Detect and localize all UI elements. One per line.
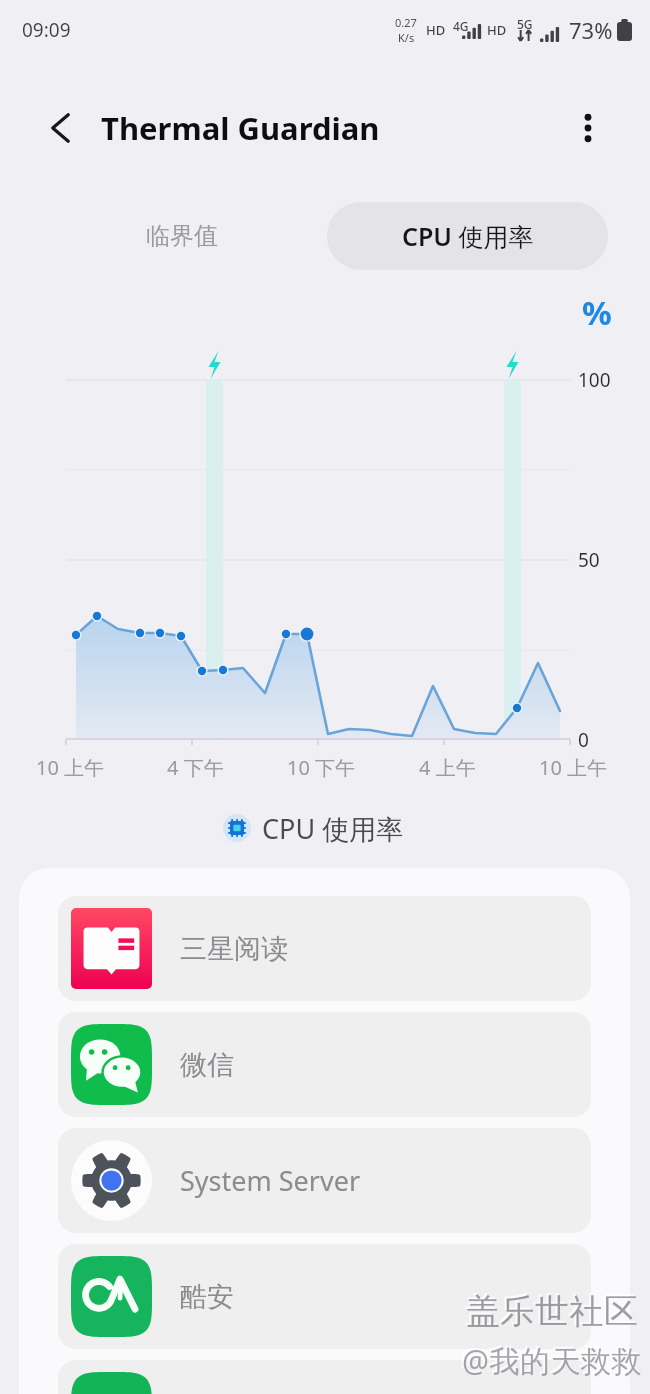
staticText: 10 下午 [287, 754, 356, 781]
button[interactable]: 临界值 [42, 202, 323, 270]
staticText: % [582, 290, 612, 330]
button[interactable] [58, 1360, 591, 1394]
staticText: 4 上午 [419, 754, 476, 781]
button[interactable]: System Server [58, 1128, 591, 1233]
staticText: 酷安 [180, 1280, 234, 1314]
button[interactable]: 微信 [58, 1012, 591, 1117]
staticText: 临界值 [146, 221, 218, 251]
staticText: 盖乐世社区 [464, 1288, 637, 1331]
button[interactable]: More options [565, 105, 611, 151]
staticText: 4G [453, 18, 469, 34]
staticText: HD [426, 21, 446, 39]
button[interactable]: CPU 使用率 [0, 798, 638, 858]
staticText: 三星阅读 [180, 932, 288, 966]
staticText: @我的天救救 [460, 1338, 640, 1379]
button[interactable]: 三星阅读 [58, 896, 591, 1001]
button[interactable]: 酷安 [58, 1244, 591, 1349]
staticText: K/s [398, 30, 415, 45]
staticText: 100 [578, 367, 611, 393]
staticText: System Server [180, 1162, 361, 1199]
staticText: HD [487, 21, 507, 39]
staticText: CPU 使用率 [402, 219, 534, 253]
staticText: 0.27 [395, 15, 417, 30]
staticText: 4 下午 [167, 754, 224, 781]
staticText: 73% [569, 15, 613, 45]
button[interactable]: Back [35, 103, 85, 153]
staticText: CPU 使用率 [262, 810, 404, 847]
staticText: 10 上午 [539, 754, 608, 781]
staticText: 0 [578, 727, 589, 753]
staticText: 09:09 [22, 17, 71, 43]
staticText: 5G [517, 16, 533, 32]
staticText: Thermal Guardian [101, 107, 380, 149]
staticText: 50 [578, 547, 600, 573]
button[interactable]: CPU 使用率 [327, 202, 608, 270]
staticText: 10 上午 [36, 754, 105, 781]
staticText: 微信 [180, 1048, 234, 1082]
staticText: 盖乐世社区 [466, 1290, 639, 1333]
staticText: @我的天救救 [462, 1340, 642, 1381]
